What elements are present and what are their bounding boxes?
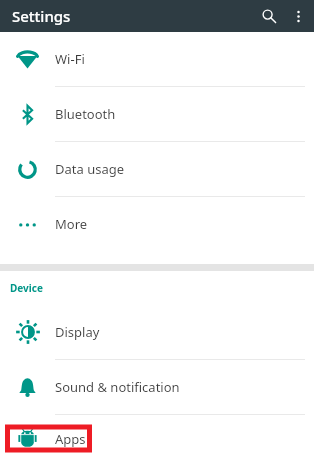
staticText: Display [55, 323, 100, 341]
staticText: Wi-Fi [55, 50, 85, 68]
staticText: Settings [12, 6, 71, 26]
button[interactable]: Display [0, 305, 314, 359]
button[interactable]: Sound & notification [0, 360, 314, 414]
button[interactable]: Search [256, 3, 282, 29]
staticText: Bluetooth [55, 105, 116, 123]
button[interactable]: Apps [0, 415, 314, 462]
staticText: Sound & notification [55, 378, 180, 396]
button[interactable]: More [0, 197, 314, 251]
button[interactable]: Wi-Fi [0, 32, 314, 86]
staticText: Data usage [55, 160, 125, 178]
button[interactable]: Data usage [0, 142, 314, 196]
staticText: Device [10, 281, 43, 295]
button[interactable]: Bluetooth [0, 87, 314, 141]
staticText: More [55, 215, 88, 233]
button[interactable]: More options [286, 4, 310, 28]
staticText: Apps [55, 430, 86, 448]
